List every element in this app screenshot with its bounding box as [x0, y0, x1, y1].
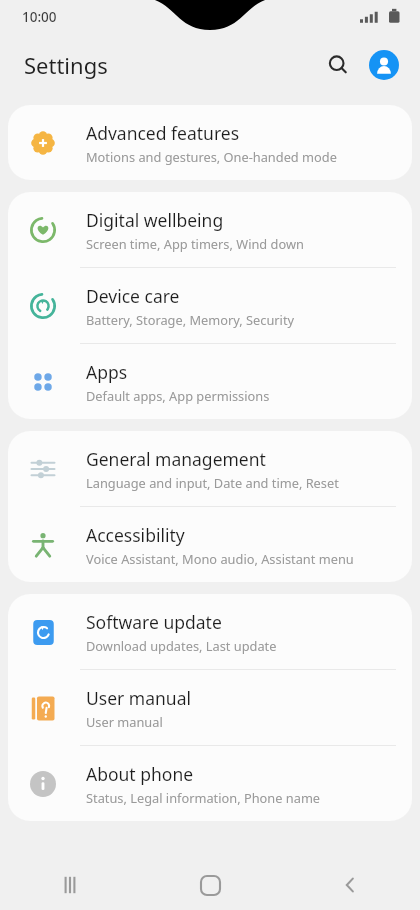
staticText: Default apps, App permissions — [86, 387, 270, 404]
staticText: Software update — [86, 610, 222, 634]
staticText: Motions and gestures, One-handed mode — [86, 148, 337, 165]
staticText: Language and input, Date and time, Reset — [86, 474, 339, 491]
button[interactable]: Recents — [0, 860, 140, 910]
staticText: User manual — [86, 713, 163, 730]
button[interactable]: Search — [318, 45, 358, 85]
button[interactable]: Advanced features — [8, 105, 412, 180]
button[interactable]: Device care — [8, 268, 412, 343]
staticText: Apps — [86, 360, 128, 384]
button[interactable]: About phone — [8, 746, 412, 821]
button[interactable]: Software update — [8, 594, 412, 669]
staticText: Status, Legal information, Phone name — [86, 789, 321, 806]
button[interactable]: Digital wellbeing — [8, 192, 412, 267]
staticText: User manual — [86, 686, 191, 710]
staticText: Screen time, App timers, Wind down — [86, 235, 304, 252]
staticText: Voice Assistant, Mono audio, Assistant m… — [86, 550, 354, 567]
staticText: About phone — [86, 762, 194, 786]
button[interactable]: Home — [140, 860, 280, 910]
button[interactable]: Account — [364, 45, 404, 85]
button[interactable]: Apps — [8, 344, 412, 419]
staticText: Settings — [24, 50, 108, 80]
staticText: Device care — [86, 284, 180, 308]
staticText: Download updates, Last update — [86, 637, 277, 654]
staticText: 10:00 — [22, 8, 57, 26]
staticText: Digital wellbeing — [86, 208, 224, 232]
button[interactable]: Accessibility — [8, 507, 412, 582]
staticText: Accessibility — [86, 523, 185, 547]
staticText: Advanced features — [86, 121, 240, 145]
button[interactable]: Back — [280, 860, 420, 910]
staticText: Battery, Storage, Memory, Security — [86, 311, 295, 328]
button[interactable]: User manual — [8, 670, 412, 745]
staticText: General management — [86, 447, 266, 471]
button[interactable]: General management — [8, 431, 412, 506]
